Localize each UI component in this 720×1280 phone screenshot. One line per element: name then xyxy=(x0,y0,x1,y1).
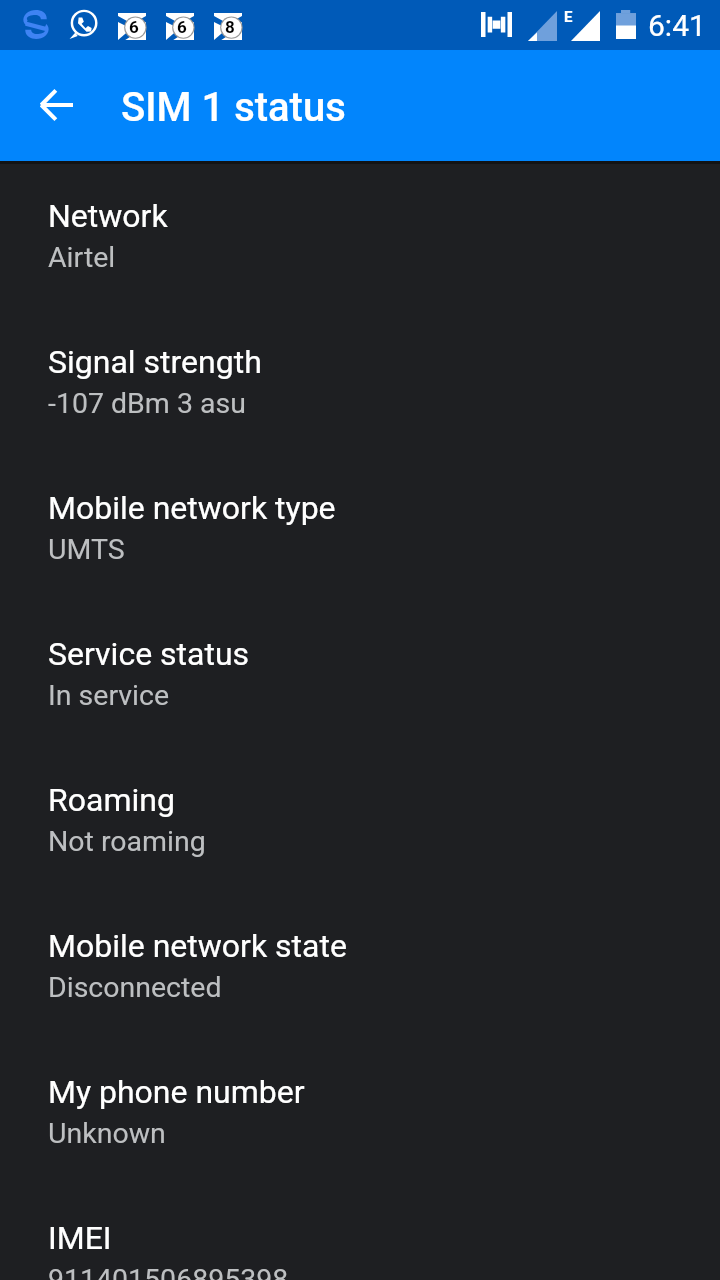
staticText: Service status xyxy=(48,635,250,673)
button[interactable]: Network xyxy=(0,161,720,307)
staticText: Mobile network state xyxy=(48,927,347,965)
staticText: Mobile network type xyxy=(48,489,336,527)
other: SIM 1 signal strength xyxy=(528,11,557,41)
other: 8 unread messages xyxy=(214,13,242,40)
button[interactable]: Service status xyxy=(0,599,720,745)
other: 6 unread messages xyxy=(118,13,146,40)
staticText: 6 xyxy=(129,17,139,37)
other: 6 unread messages xyxy=(166,13,194,40)
staticText: Roaming xyxy=(48,781,175,819)
staticText: Airtel xyxy=(48,241,116,274)
button[interactable]: Signal strength xyxy=(0,307,720,453)
staticText: Disconnected xyxy=(48,971,222,1004)
button[interactable]: My phone number xyxy=(0,1037,720,1183)
button[interactable]: IMEI xyxy=(0,1183,720,1280)
staticText: In service xyxy=(48,679,170,712)
button[interactable]: Roaming xyxy=(0,745,720,891)
staticText: IMEI xyxy=(48,1219,112,1257)
staticText: Network xyxy=(48,197,168,235)
staticText: 6 xyxy=(177,17,187,37)
staticText: SIM 1 status xyxy=(121,84,346,131)
staticText: Signal strength xyxy=(48,343,262,381)
staticText: UMTS xyxy=(48,533,125,566)
other: Vibrate mode xyxy=(481,12,512,37)
other: WhatsApp notification xyxy=(69,10,98,39)
staticText: My phone number xyxy=(48,1073,305,1111)
staticText: 911401506895398 xyxy=(48,1263,289,1280)
staticText: -107 dBm 3 asu xyxy=(48,387,246,420)
staticText: Unknown xyxy=(48,1117,166,1150)
other: Battery level xyxy=(616,10,636,39)
staticText: 8 xyxy=(225,17,235,37)
button[interactable]: Mobile network type xyxy=(0,453,720,599)
staticText: Not roaming xyxy=(48,825,206,858)
staticText: E xyxy=(564,8,573,26)
button[interactable]: Mobile network state xyxy=(0,891,720,1037)
staticText: 6:41 xyxy=(648,8,706,43)
other: Skype notification xyxy=(21,9,51,40)
button[interactable]: Back xyxy=(24,73,88,137)
other: SIM 2 signal strength xyxy=(571,11,600,41)
